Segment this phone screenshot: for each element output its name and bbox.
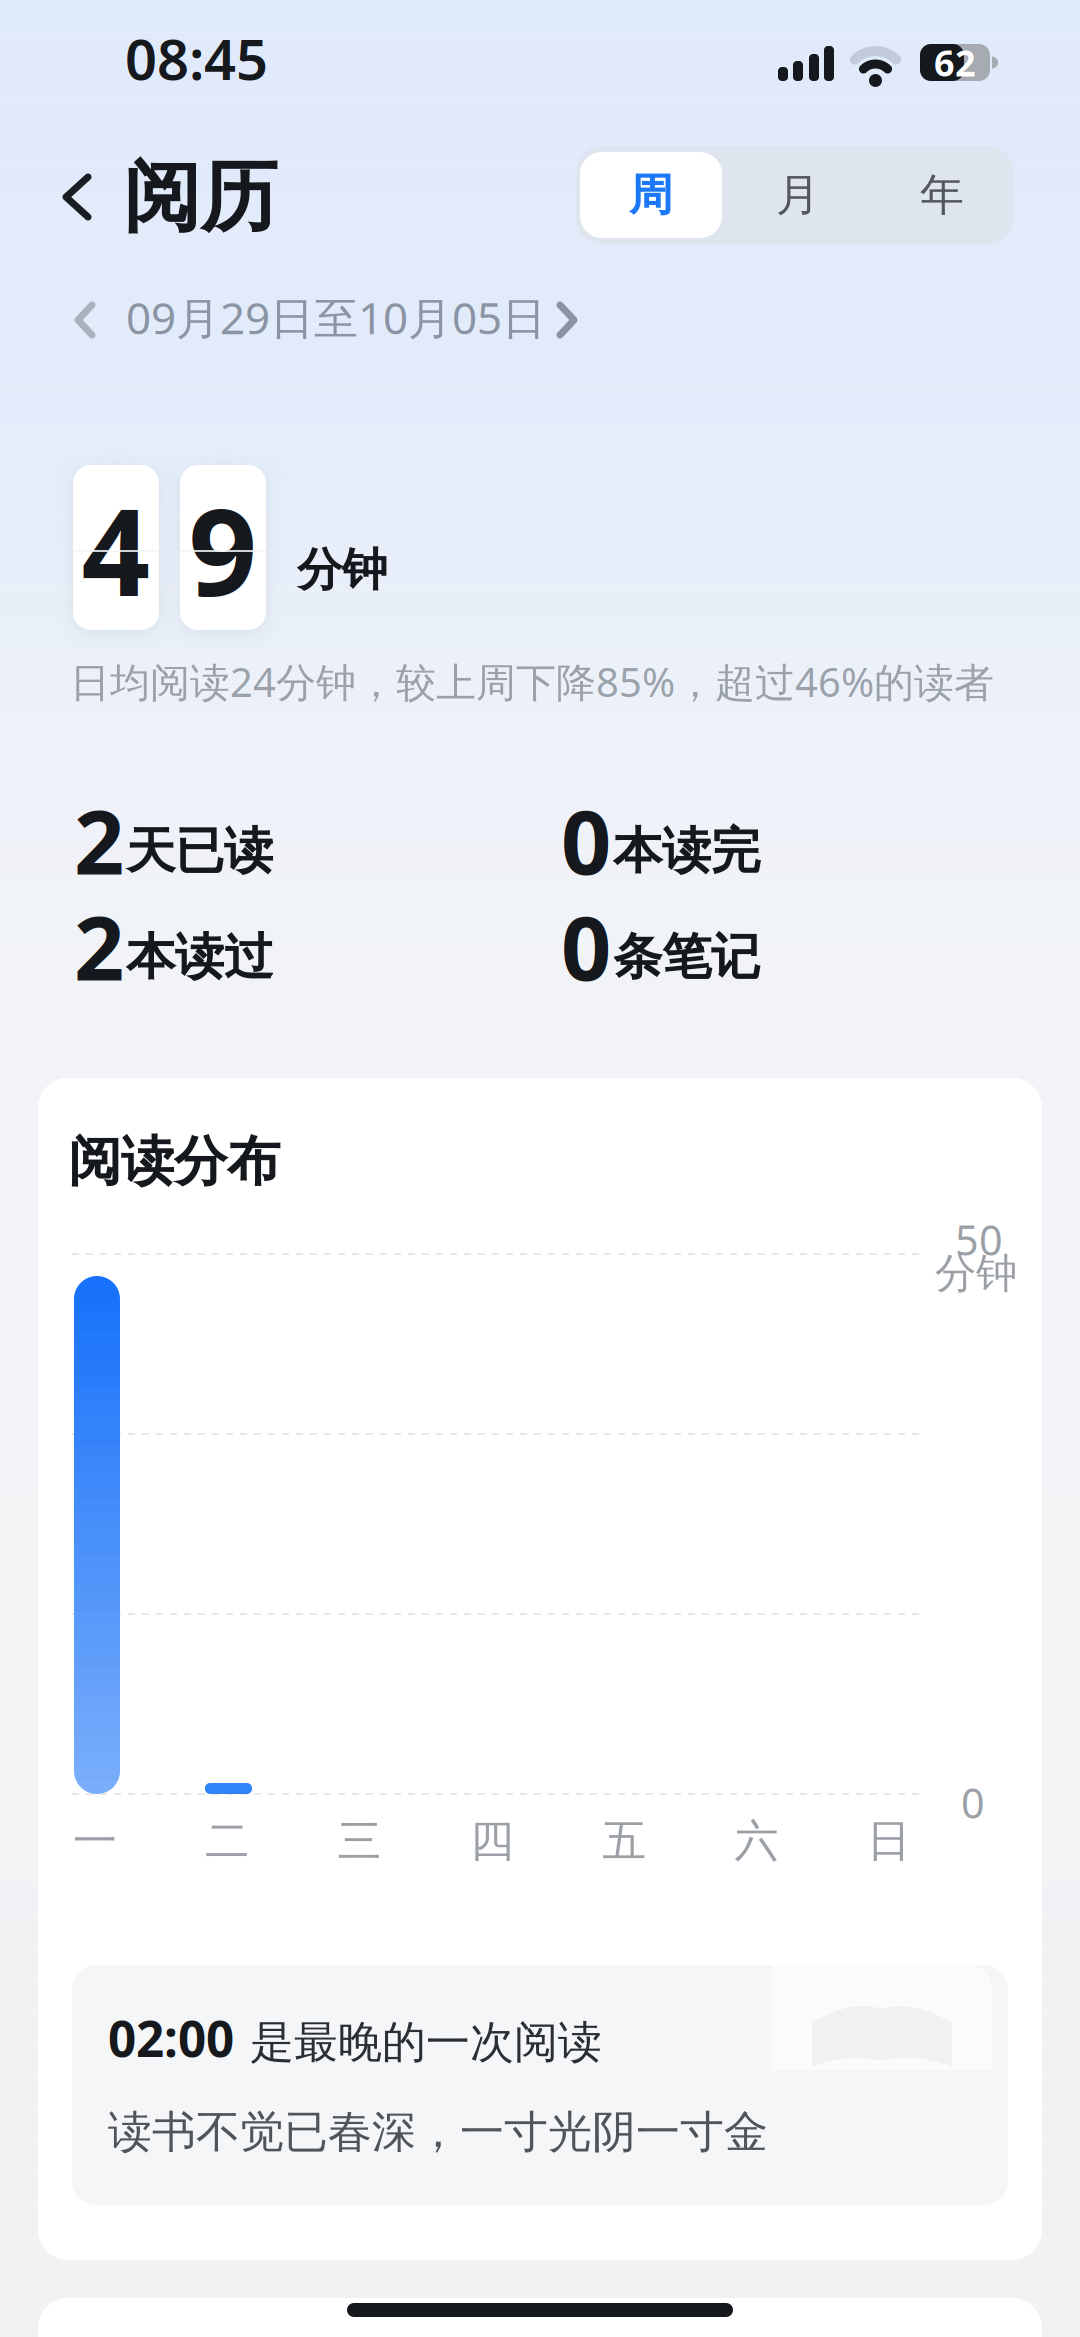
staticText: 条笔记 (613, 927, 760, 987)
button[interactable]: 月 (726, 146, 870, 244)
staticText: 阅历 (123, 150, 277, 245)
staticText: 50 (955, 1212, 1003, 1267)
staticText: 四 (470, 1814, 514, 1868)
staticText: 本读完 (613, 821, 760, 881)
staticText: 2 (74, 888, 124, 1005)
staticText: 本读过 (126, 927, 273, 987)
staticText: 0 (561, 888, 611, 1005)
staticText: 4 (81, 470, 150, 629)
staticText: 月 (776, 168, 820, 222)
staticText: 分钟 (935, 1248, 1017, 1299)
button[interactable]: 周 (576, 146, 726, 244)
staticText: 阅读分布 (68, 1129, 280, 1194)
staticText: 周 (629, 168, 673, 222)
button[interactable]: Previous week (70, 297, 100, 343)
staticText: 三 (338, 1814, 382, 1868)
staticText: 日 (867, 1814, 911, 1868)
staticText: 分钟 (297, 542, 387, 598)
staticText: 六 (734, 1814, 778, 1868)
staticText: 02:00 (108, 2005, 234, 2070)
staticText: 天已读 (126, 821, 273, 881)
staticText: 年 (920, 168, 964, 222)
button[interactable]: Back (48, 152, 112, 242)
staticText: 62 (934, 39, 976, 86)
button[interactable]: 年 (870, 146, 1014, 244)
staticText: 五 (602, 1814, 646, 1868)
staticText: 09月29日至10月05日 (126, 288, 546, 346)
staticText: 0 (561, 782, 611, 899)
staticText: 0 (961, 1775, 985, 1830)
button[interactable]: Next week (552, 297, 582, 343)
staticText: 二 (205, 1814, 249, 1868)
staticText: 读书不觉已春深，一寸光阴一寸金 (108, 2105, 768, 2159)
staticText: 08:45 (125, 21, 268, 95)
staticText: 一 (73, 1814, 117, 1868)
staticText: 日均阅读24分钟，较上周下降85%，超过46%的读者 (70, 655, 994, 708)
staticText: 是最晚的一次阅读 (250, 2015, 602, 2069)
staticText: 9 (188, 470, 257, 629)
staticText: 2 (74, 782, 124, 899)
